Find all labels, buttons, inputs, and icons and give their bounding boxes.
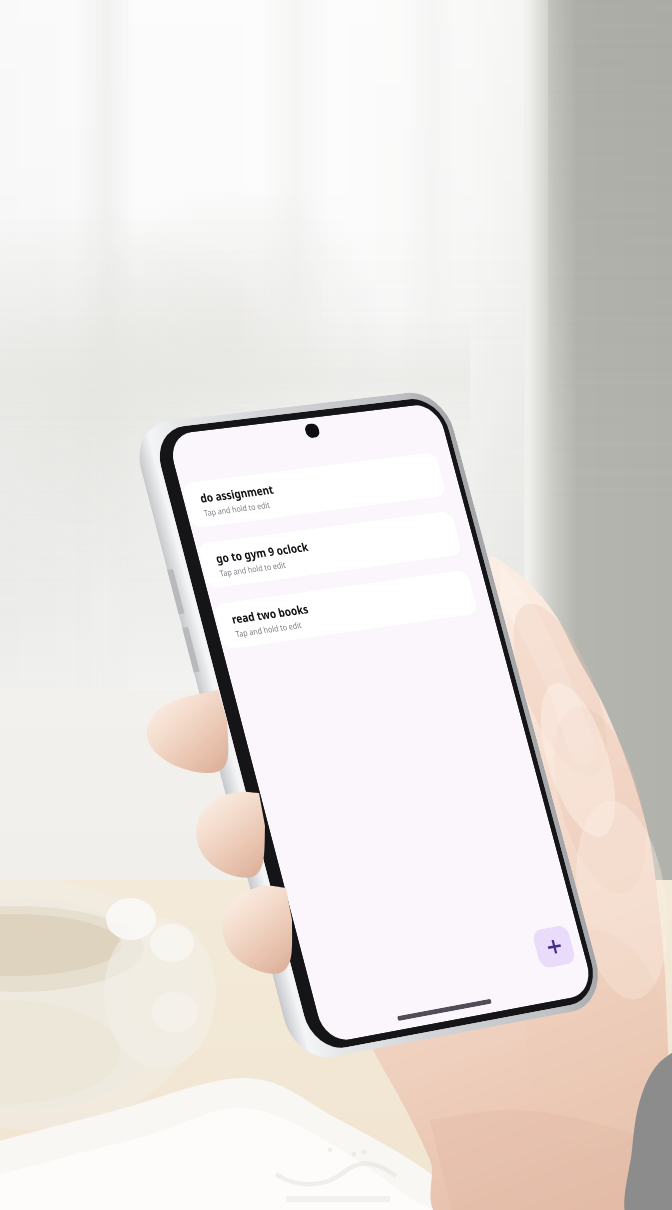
staticText: Tap and hold to edit — [203, 499, 272, 519]
staticText: read two books — [230, 600, 310, 627]
button[interactable]: do assignment — [181, 452, 447, 529]
staticText: Tap and hold to edit — [218, 559, 287, 579]
button[interactable]: go to gym 9 oclock — [197, 510, 463, 589]
button[interactable]: Add task — [531, 924, 577, 969]
staticText: Tap and hold to edit — [234, 619, 303, 640]
staticText: do assignment — [198, 481, 275, 506]
button[interactable]: read two books — [212, 569, 478, 650]
staticText: go to gym 9 oclock — [214, 538, 310, 566]
